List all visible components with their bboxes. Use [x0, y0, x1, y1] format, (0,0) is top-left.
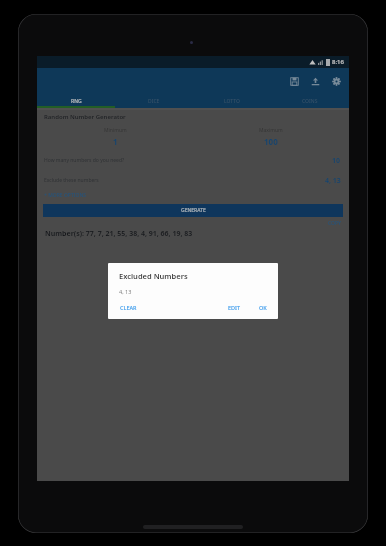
button[interactable]: COINS	[271, 94, 349, 108]
button[interactable]: EDIT	[226, 302, 243, 313]
button[interactable]: COPY	[328, 220, 341, 227]
button[interactable]: How many numbers do you need?	[37, 155, 349, 166]
staticText: 100	[264, 136, 278, 147]
staticText: COPY	[328, 220, 341, 227]
staticText: Number(s): 77, 7, 21, 55, 38, 4, 91, 66,…	[45, 229, 193, 239]
button[interactable]: DICE	[115, 94, 193, 108]
staticText: COINS	[302, 98, 318, 105]
staticText: 8:16	[332, 58, 344, 66]
staticText: 10	[332, 156, 341, 166]
button[interactable]: RNG	[37, 94, 115, 108]
button[interactable]: GENERATE	[43, 204, 343, 217]
button[interactable]: Share	[308, 74, 322, 88]
button[interactable]: Maximum	[193, 127, 349, 147]
button[interactable]: CLEAR	[118, 302, 139, 313]
staticText: Excluded Numbers	[119, 271, 188, 281]
staticText: CLEAR	[120, 304, 137, 311]
staticText: Maximum	[259, 127, 283, 134]
button[interactable]: Settings	[329, 74, 343, 88]
staticText: + MORE OPTIONS	[44, 192, 87, 199]
button[interactable]: Exclude these numbers	[37, 175, 349, 186]
staticText: GENERATE	[181, 207, 206, 214]
staticText: 4, 13	[325, 176, 341, 186]
staticText: DICE	[148, 98, 160, 105]
button[interactable]: Save	[287, 74, 301, 88]
staticText: Minimum	[104, 127, 127, 134]
button[interactable]: LOTTO	[193, 94, 271, 108]
staticText: Exclude these numbers	[44, 177, 99, 184]
button[interactable]: + MORE OPTIONS	[44, 192, 87, 199]
staticText: LOTTO	[224, 98, 240, 105]
staticText: 4, 13	[119, 288, 132, 295]
staticText: RNG	[71, 98, 82, 105]
staticText: 1	[113, 136, 118, 147]
button[interactable]: OK	[257, 302, 269, 313]
staticText: How many numbers do you need?	[44, 157, 125, 164]
staticText: Random Number Generator	[44, 113, 126, 121]
staticText: OK	[259, 304, 267, 311]
staticText: EDIT	[228, 304, 241, 311]
